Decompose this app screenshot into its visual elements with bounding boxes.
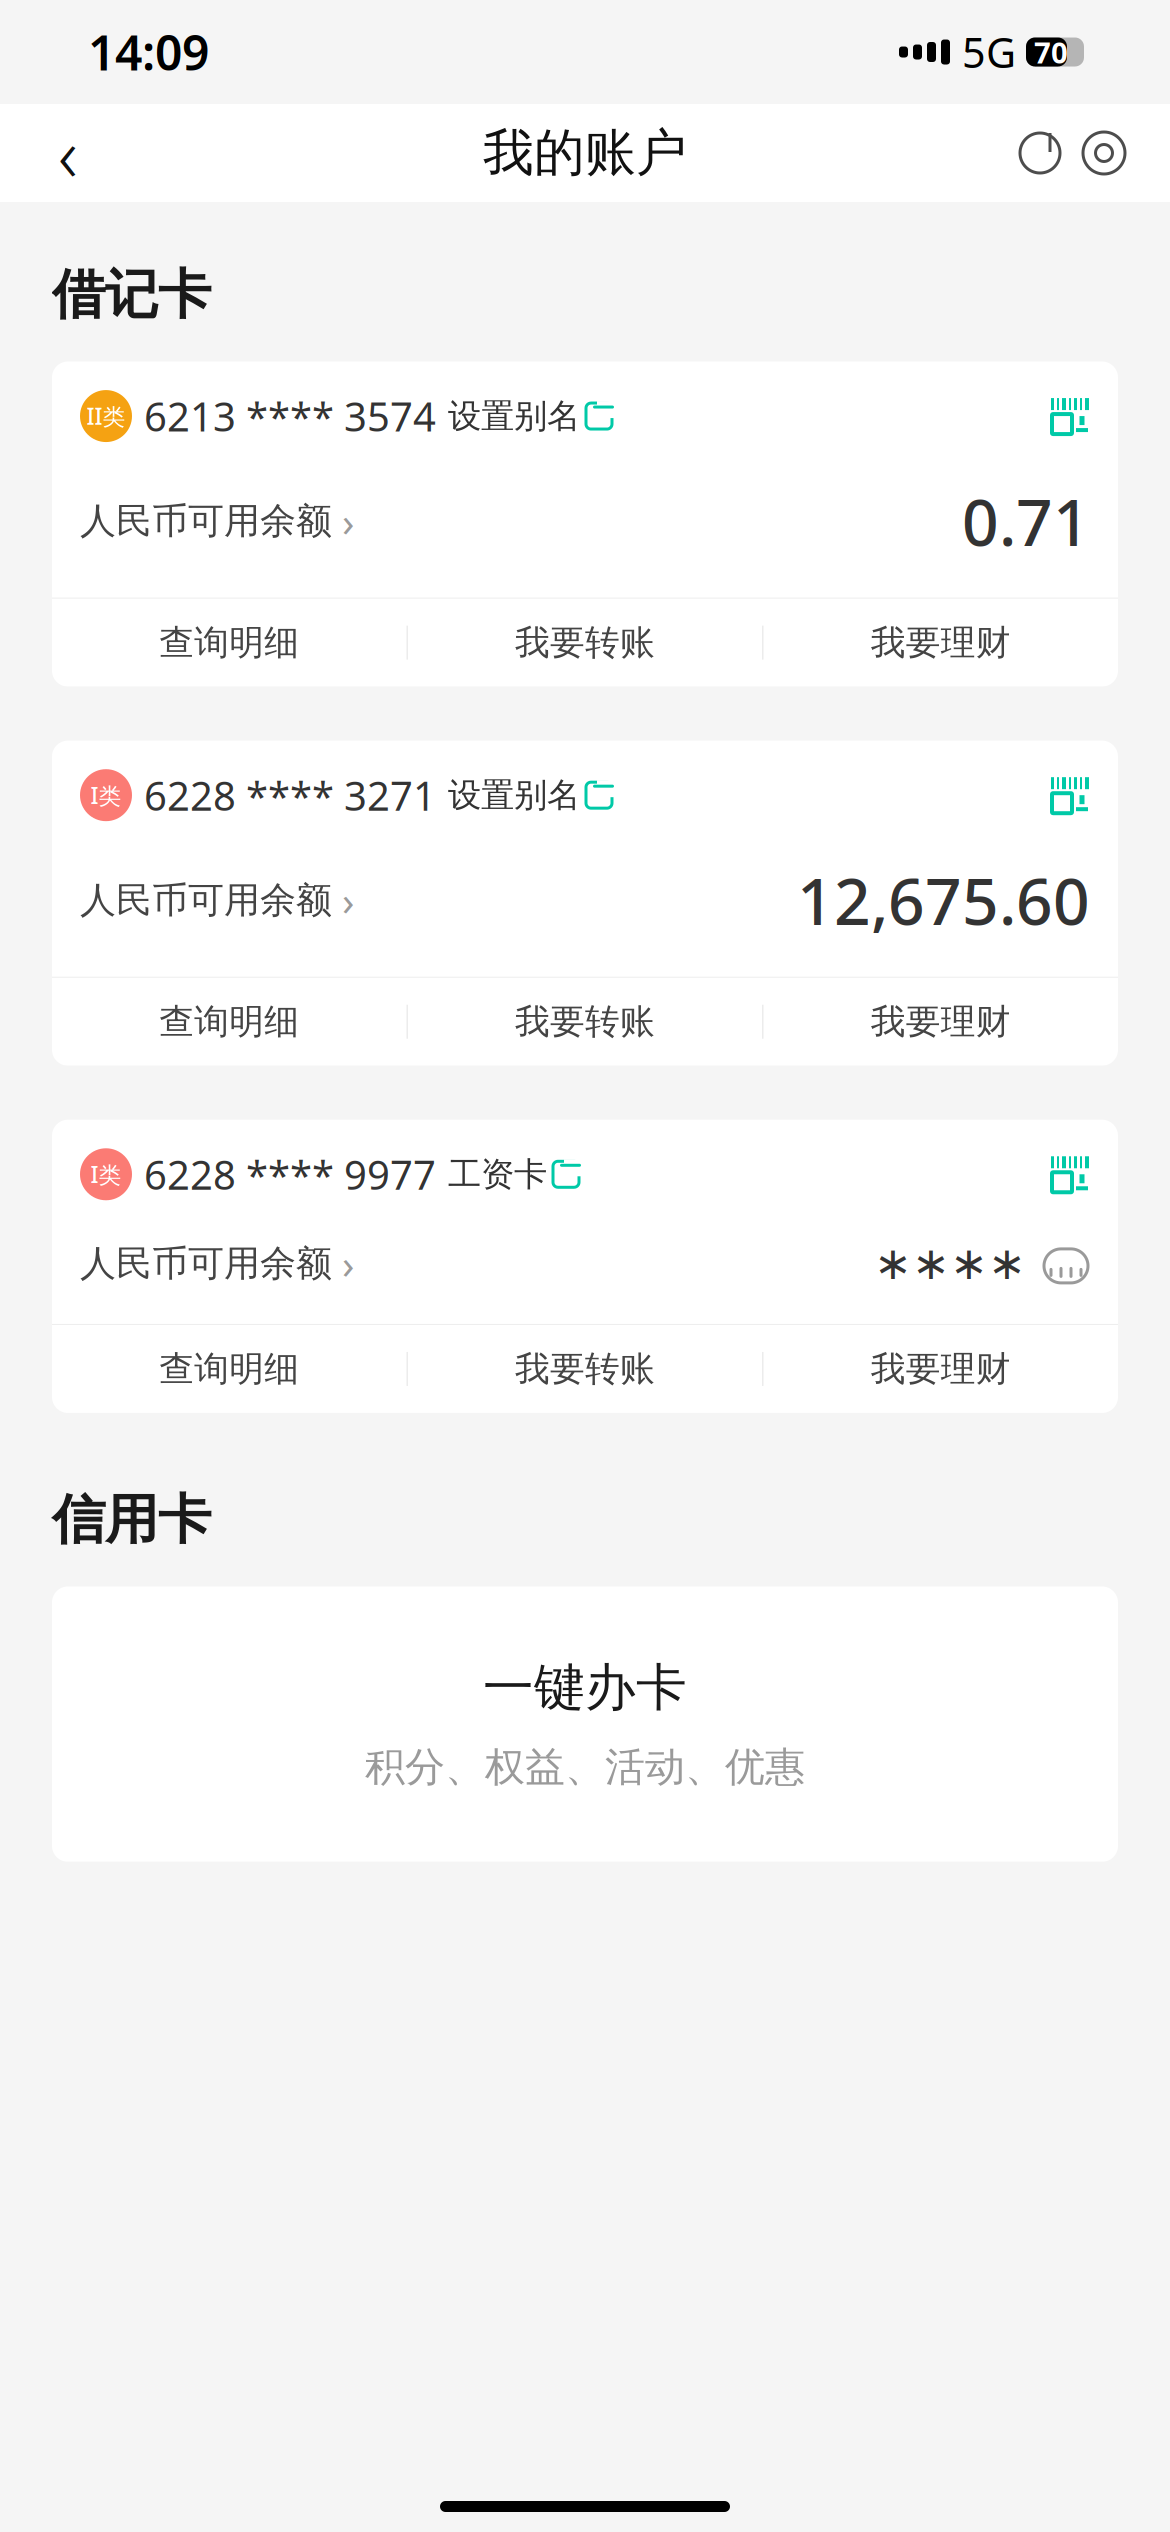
staticText: 我要理财 (871, 621, 1011, 664)
staticText: 我要转账 (515, 1348, 655, 1390)
button[interactable]: 我要转账 (408, 1325, 762, 1413)
button[interactable]: 扫一扫 (1042, 777, 1088, 813)
staticText: 人民币可用余额 (80, 499, 332, 543)
staticText: ∗∗∗∗ (874, 1238, 1026, 1289)
staticText: 查询明细 (159, 621, 299, 664)
staticText: 14:09 (88, 20, 209, 84)
button[interactable]: 我要转账 (408, 599, 762, 687)
button[interactable]: 我要理财 (763, 1325, 1118, 1413)
button[interactable]: 我要转账 (408, 978, 762, 1066)
staticText: 我要转账 (515, 1000, 655, 1043)
staticText: ‹ (58, 103, 78, 203)
button[interactable]: 查询明细 (52, 599, 407, 687)
button[interactable]: 设置别名 (436, 775, 614, 816)
button[interactable]: 返回 (28, 113, 108, 193)
button[interactable]: 显示余额 (1042, 1248, 1090, 1278)
button[interactable]: 人民币可用余额 (80, 874, 354, 927)
staticText: › (342, 1237, 354, 1290)
staticText: › (342, 495, 354, 548)
staticText: I类 (90, 1159, 121, 1189)
staticText: 70 (1034, 32, 1068, 71)
button[interactable]: 人民币可用余额 (80, 1237, 354, 1290)
button[interactable]: 我要理财 (763, 978, 1118, 1066)
staticText: 我要理财 (871, 1348, 1011, 1390)
button[interactable]: 设置 (1072, 121, 1136, 185)
button[interactable]: 资产分析 (1008, 121, 1072, 185)
staticText: 一键办卡 (483, 1656, 687, 1719)
staticText: 查询明细 (159, 1000, 299, 1043)
staticText: 我要理财 (871, 1000, 1011, 1043)
button[interactable]: 查询明细 (52, 978, 407, 1066)
button[interactable]: 扫一扫 (1042, 1156, 1088, 1192)
staticText: 借记卡 (52, 262, 211, 327)
staticText: 积分、权益、活动、优惠 (365, 1743, 805, 1792)
button[interactable]: 工资卡 (436, 1154, 581, 1195)
staticText: 5G (962, 25, 1016, 79)
staticText: › (342, 874, 354, 927)
staticText: 人民币可用余额 (80, 878, 332, 922)
staticText: 工资卡 (448, 1154, 547, 1195)
button[interactable]: 设置别名 (436, 396, 614, 436)
staticText: 我的账户 (483, 122, 687, 184)
staticText: 6213 **** 3574 (144, 389, 436, 443)
staticText: 设置别名 (448, 396, 580, 436)
button[interactable]: 一键办卡 (0, 1586, 1170, 1862)
staticText: 6228 **** 3271 (144, 769, 436, 822)
staticText: I类 (90, 780, 121, 810)
staticText: 设置别名 (448, 775, 580, 816)
button[interactable]: 扫一扫 (1042, 398, 1088, 434)
staticText: 12,675.60 (797, 858, 1090, 943)
button[interactable]: 我要理财 (763, 599, 1118, 687)
button[interactable]: 人民币可用余额 (80, 495, 354, 548)
staticText: 人民币可用余额 (80, 1241, 332, 1285)
staticText: 查询明细 (159, 1348, 299, 1390)
staticText: 信用卡 (52, 1487, 211, 1552)
staticText: 6228 **** 9977 (144, 1148, 436, 1201)
staticText: II类 (86, 401, 125, 431)
staticText: 0.71 (962, 479, 1090, 564)
button[interactable]: 查询明细 (52, 1325, 407, 1413)
staticText: 我要转账 (515, 621, 655, 664)
